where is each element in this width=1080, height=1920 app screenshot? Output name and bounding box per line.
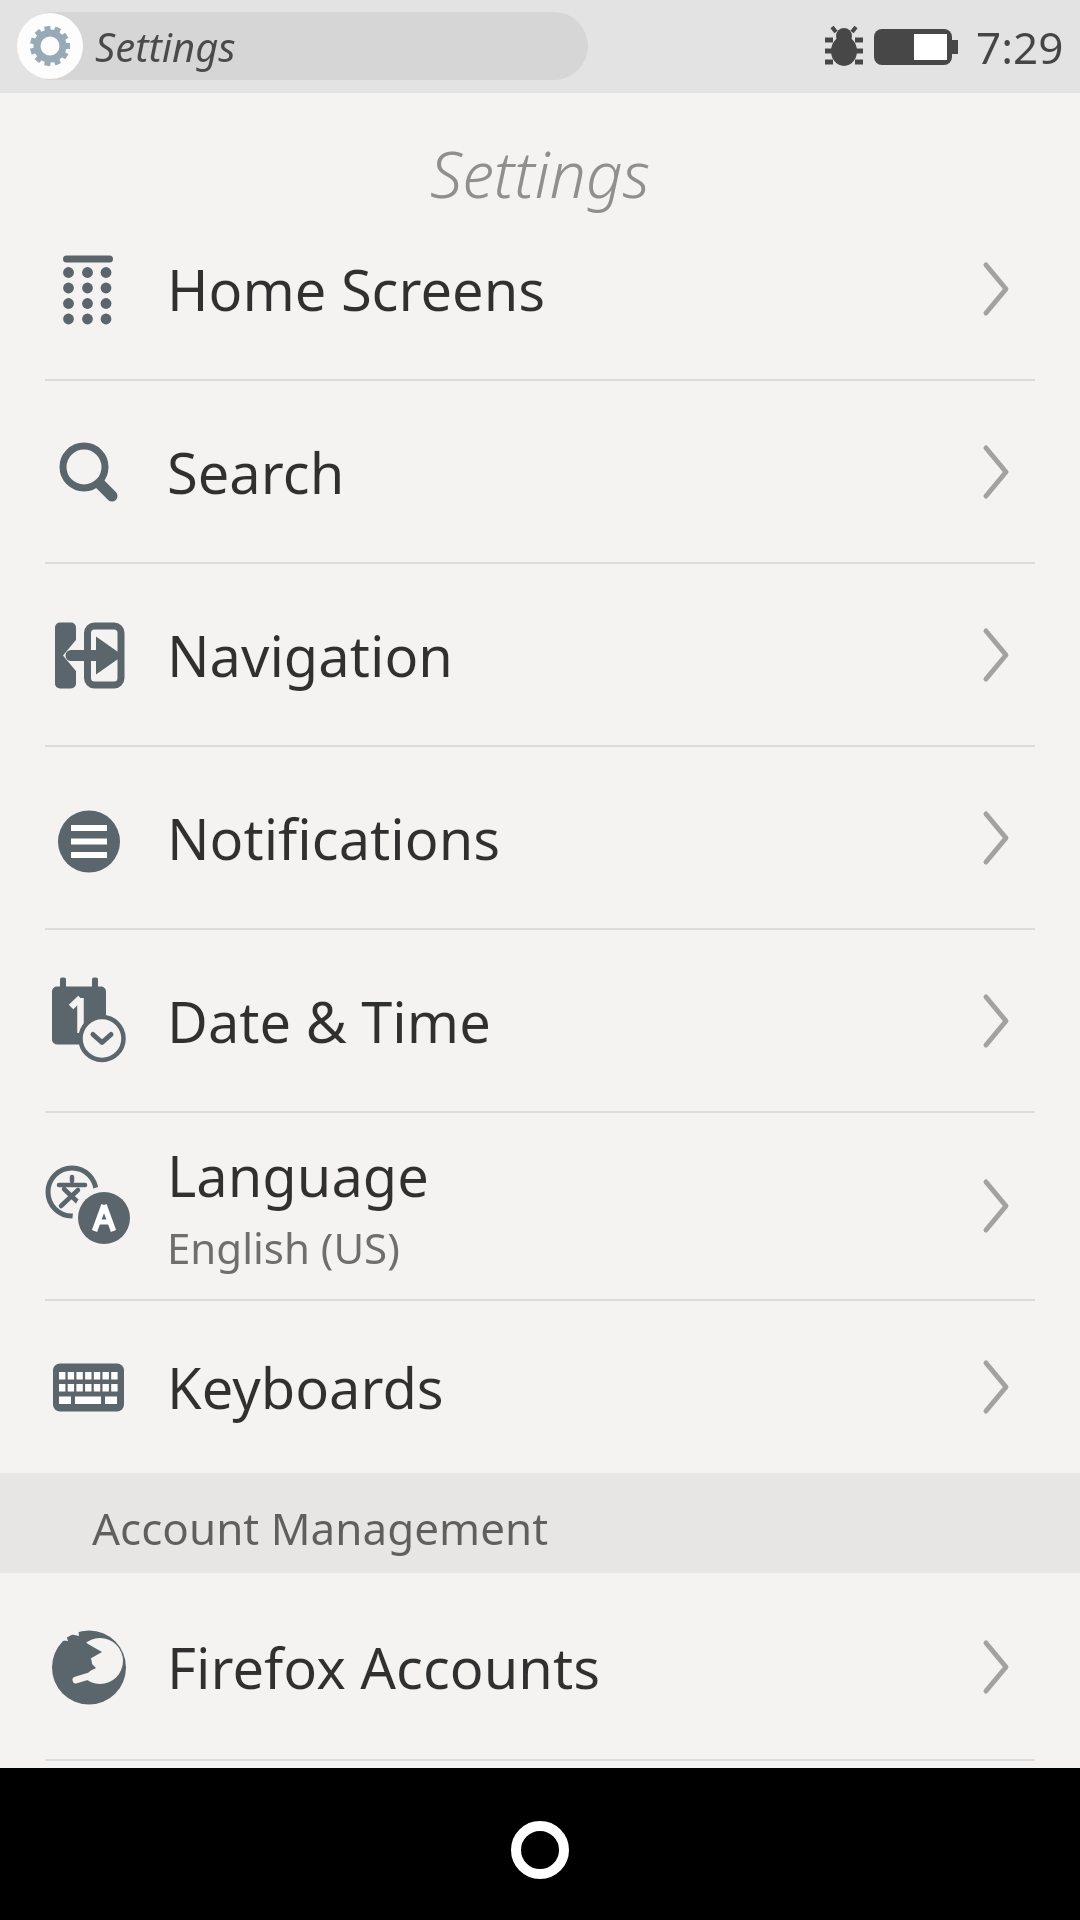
staticText: Language [167,1137,429,1213]
staticText: Account Management [92,1498,549,1558]
staticText: 7:29 [976,17,1064,77]
button[interactable]: Search [0,380,1080,563]
button[interactable]: Settings [18,12,588,80]
button[interactable]: Keyboards [0,1300,1080,1473]
staticText: Home Screens [167,251,546,327]
staticText: Date & Time [167,983,491,1059]
staticText: Settings [95,19,236,73]
button[interactable]: Firefox Accounts [0,1573,1080,1760]
staticText: Navigation [167,617,453,693]
staticText: Notifications [167,800,501,876]
staticText: English (US) [167,1219,400,1276]
button[interactable] [0,1768,1080,1920]
button[interactable]: Language [0,1112,1080,1300]
button[interactable]: Navigation [0,563,1080,746]
button[interactable]: Notifications [0,746,1080,929]
staticText: Firefox Accounts [167,1629,600,1705]
button[interactable]: Home Screens [0,197,1080,380]
staticText: Search [167,434,345,510]
staticText: Keyboards [167,1349,444,1425]
staticText: Settings [0,130,1080,217]
button[interactable]: Date & Time [0,929,1080,1112]
